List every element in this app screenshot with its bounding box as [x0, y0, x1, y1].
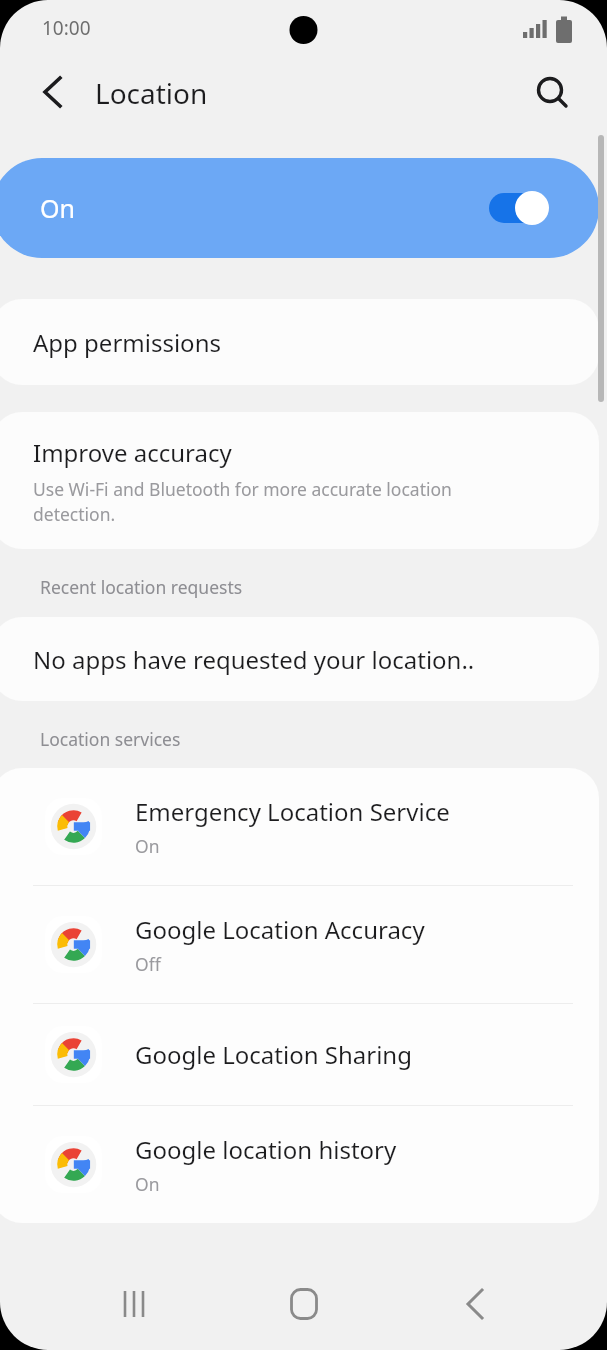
button[interactable]: Google Location Accuracy [0, 886, 599, 1003]
button[interactable]: Search [524, 64, 580, 120]
staticText: 10:00 [42, 15, 91, 41]
staticText: Off [135, 952, 161, 976]
button[interactable]: Recents [98, 1268, 170, 1340]
staticText: Google Location Sharing [135, 1038, 412, 1071]
staticText: On [40, 191, 75, 225]
staticText: Emergency Location Service [135, 795, 450, 828]
button[interactable]: On [0, 158, 599, 258]
button[interactable]: App permissions [0, 299, 599, 385]
staticText: Recent location requests [40, 575, 243, 599]
staticText: On [135, 1172, 160, 1196]
staticText: Improve accuracy [33, 436, 232, 469]
button[interactable]: Improve accuracy [0, 412, 599, 549]
staticText: Location services [40, 727, 181, 751]
staticText: Google Location Accuracy [135, 913, 425, 946]
button[interactable]: Back [24, 64, 80, 120]
button[interactable]: Home [268, 1268, 340, 1340]
staticText: No apps have requested your location.. [33, 643, 475, 676]
staticText: Google location history [135, 1133, 397, 1166]
button[interactable]: Google Location Sharing [0, 1004, 599, 1105]
staticText: On [135, 834, 160, 858]
staticText: Location [95, 74, 208, 112]
button[interactable]: Google location history [0, 1106, 599, 1223]
staticText: Use Wi-Fi and Bluetooth for more accurat… [33, 477, 452, 526]
button[interactable]: No apps have requested your location.. [0, 617, 599, 701]
button[interactable]: Back [437, 1268, 509, 1340]
staticText: App permissions [33, 326, 221, 359]
button[interactable]: Emergency Location Service [0, 768, 599, 885]
